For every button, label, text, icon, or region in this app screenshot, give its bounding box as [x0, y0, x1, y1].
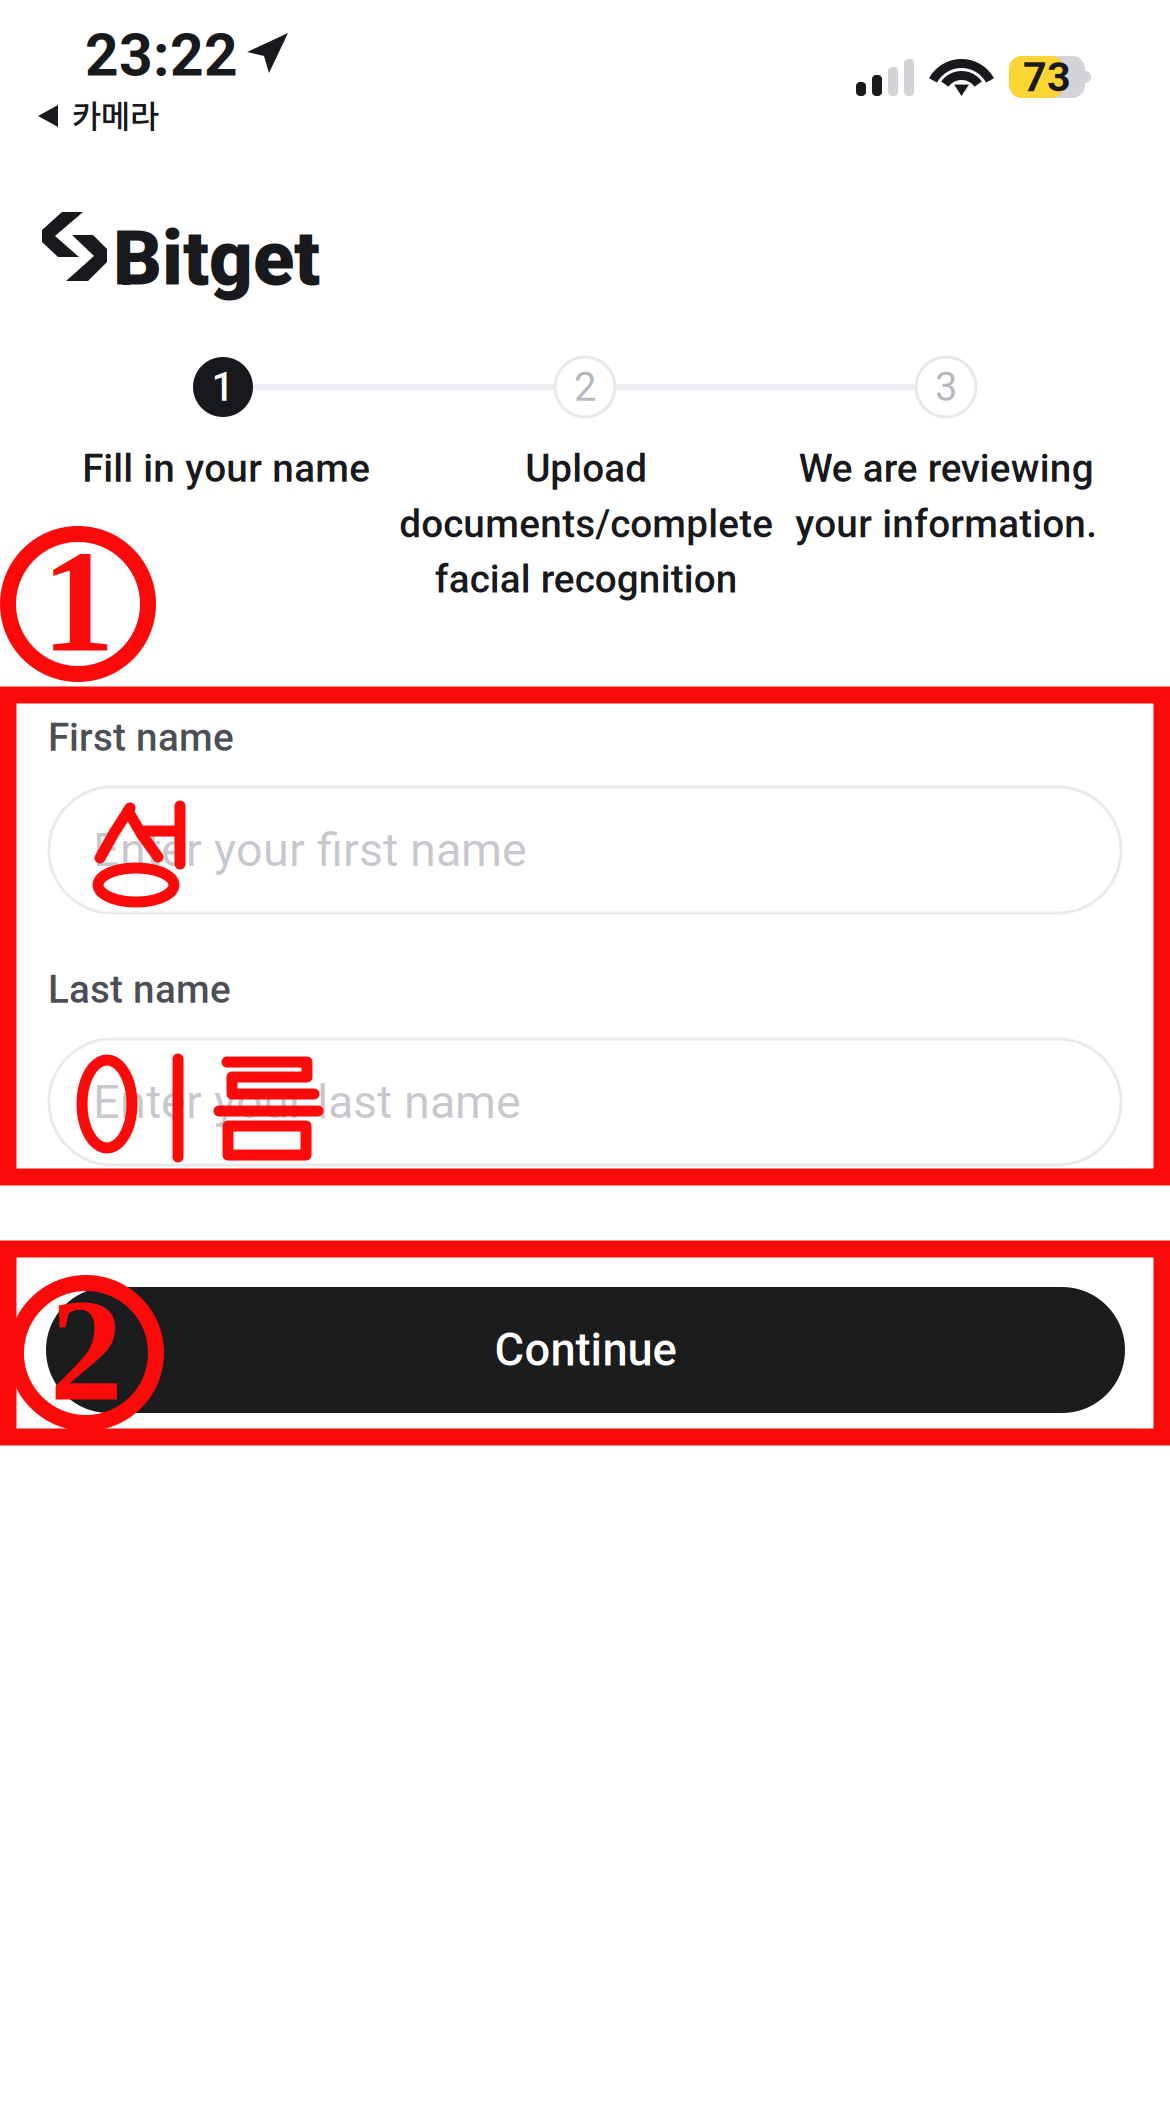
staticText: Bitget [113, 214, 320, 303]
staticText: Enter your first name [93, 823, 527, 877]
staticText: Enter your last name [93, 1075, 521, 1129]
button[interactable]: Enter your first name [49, 787, 1121, 913]
staticText: 23:22 [85, 21, 238, 90]
staticText: First name [48, 715, 234, 760]
staticText: We are reviewing your information. [795, 446, 1097, 547]
staticText: 카메라 [72, 91, 159, 137]
staticText: Fill in your name [82, 446, 370, 491]
staticText: 3 [935, 364, 957, 410]
staticText: 73 [1023, 53, 1071, 101]
staticText: Last name [48, 967, 231, 1012]
staticText: Upload documents/complete facial recogni… [399, 446, 773, 602]
button[interactable]: Continue [46, 1287, 1125, 1413]
staticText: 1 [211, 364, 234, 410]
staticText: 1 [41, 520, 114, 682]
staticText: Continue [494, 1323, 676, 1376]
staticText: 2 [574, 364, 596, 410]
button[interactable]: Enter your last name [49, 1039, 1121, 1165]
button[interactable]: 카메라 [38, 99, 159, 133]
staticText: 2 [49, 1269, 122, 1431]
